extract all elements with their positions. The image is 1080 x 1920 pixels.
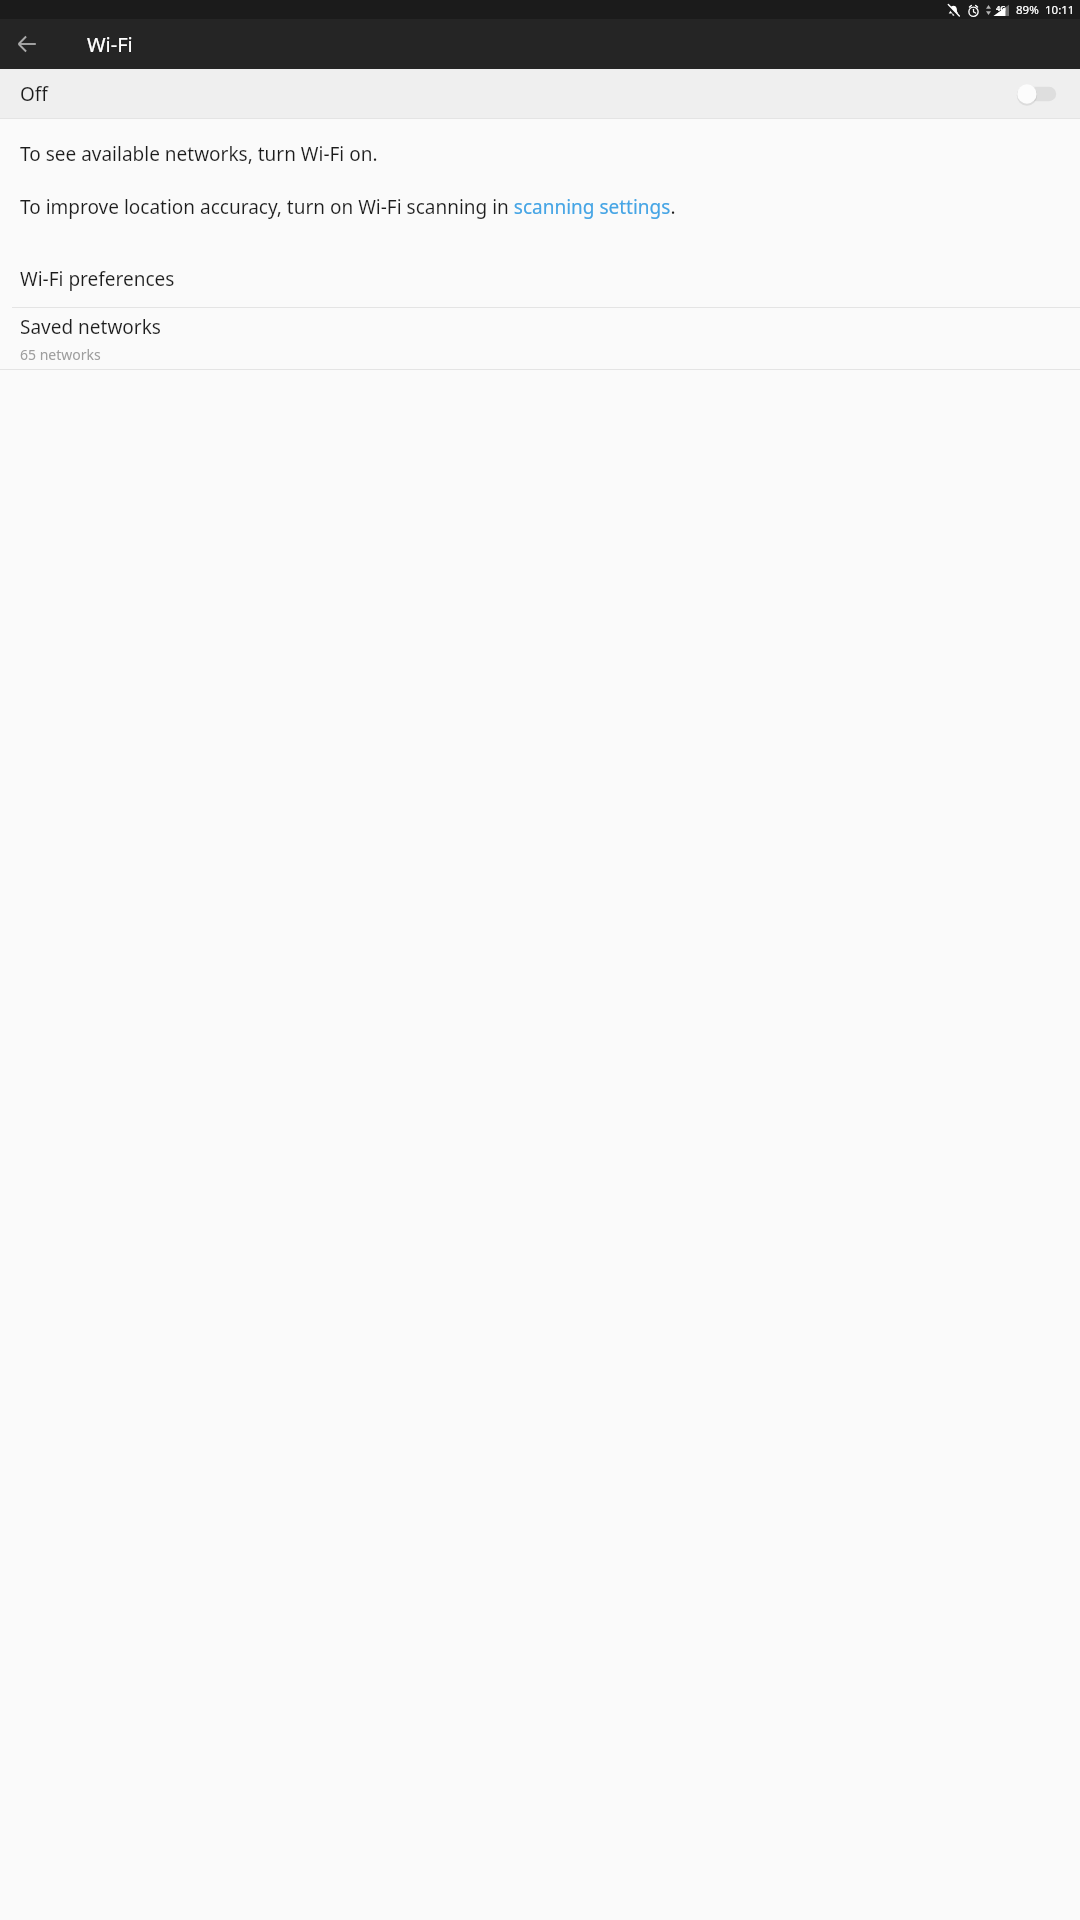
button[interactable]: Wi-Fi preferences — [0, 251, 1080, 307]
staticText: 4G — [996, 3, 1006, 13]
staticText: To see available networks, turn Wi-Fi on… — [20, 141, 378, 167]
staticText: 89% — [1016, 2, 1039, 18]
staticText: 10:11 — [1045, 2, 1075, 18]
staticText: To improve location accuracy, turn on Wi… — [20, 194, 910, 220]
staticText: Wi-Fi preferences — [20, 266, 175, 292]
button[interactable]: Saved networks — [0, 308, 1080, 369]
staticText: Wi-Fi — [87, 31, 133, 58]
button[interactable]: Off — [0, 69, 1080, 118]
button[interactable]: Back — [3, 20, 51, 68]
staticText: Saved networks — [20, 314, 161, 340]
button[interactable]: Turn on Wi-Fi — [1013, 77, 1058, 111]
staticText: 65 networks — [20, 345, 101, 364]
staticText: Off — [20, 81, 48, 107]
